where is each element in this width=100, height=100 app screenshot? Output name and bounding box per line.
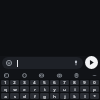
button[interactable]: Send — [85, 56, 98, 69]
button[interactable]: g — [40, 93, 49, 99]
staticText: o — [83, 87, 86, 92]
button[interactable]: s — [10, 93, 19, 99]
button[interactable]: h — [50, 93, 59, 99]
staticText: 5 — [43, 80, 46, 85]
staticText: 2 — [13, 80, 16, 85]
button[interactable]: 6 — [50, 80, 59, 85]
button[interactable]: Camera — [56, 72, 63, 79]
button[interactable]: Gallery — [3, 72, 10, 79]
button[interactable]: w — [10, 86, 19, 92]
button[interactable]: j — [60, 93, 69, 99]
staticText: 9 — [83, 80, 86, 85]
button[interactable]: 1 — [1, 80, 9, 85]
staticText: r — [34, 87, 36, 92]
staticText: p — [93, 87, 96, 92]
button[interactable]: GIF — [38, 72, 45, 79]
button[interactable]: Attach file — [73, 72, 80, 79]
staticText: s — [14, 94, 16, 99]
button[interactable]: t — [40, 86, 49, 92]
staticText: 4 — [33, 80, 36, 85]
button[interactable]: * — [90, 93, 99, 99]
button[interactable]: q — [1, 86, 9, 92]
staticText: 3 — [23, 80, 26, 85]
button[interactable]: 3 — [20, 80, 29, 85]
staticText: * — [93, 94, 96, 99]
staticText: j — [64, 94, 66, 99]
button[interactable]: Emoji — [2, 57, 83, 69]
button[interactable]: l — [80, 93, 89, 99]
button[interactable]: 0 — [90, 80, 99, 85]
button[interactable]: 5 — [40, 80, 49, 85]
staticText: g — [43, 94, 46, 99]
button[interactable]: d — [20, 93, 29, 99]
staticText: d — [23, 94, 26, 99]
staticText: a — [4, 94, 7, 99]
button[interactable]: y — [50, 86, 59, 92]
staticText: k — [73, 94, 76, 99]
staticText: t — [44, 87, 46, 92]
button[interactable]: u — [60, 86, 69, 92]
staticText: 7 — [63, 80, 66, 85]
button[interactable]: 8 — [70, 80, 79, 85]
button[interactable]: i — [70, 86, 79, 92]
button[interactable]: 2 — [10, 80, 19, 85]
staticText: i — [74, 87, 76, 92]
button[interactable]: 4 — [30, 80, 39, 85]
button[interactable]: e — [20, 86, 29, 92]
staticText: l — [84, 94, 86, 99]
staticText: 8 — [73, 80, 76, 85]
button[interactable]: Voice input — [72, 59, 80, 67]
staticText: 6 — [53, 80, 56, 85]
button[interactable]: 9 — [80, 80, 89, 85]
staticText: h — [53, 94, 56, 99]
staticText: e — [23, 87, 26, 92]
staticText: w — [13, 87, 17, 92]
button[interactable]: f — [30, 93, 39, 99]
button[interactable]: p — [90, 86, 99, 92]
staticText: 0 — [93, 80, 96, 85]
button[interactable]: Emoji — [5, 59, 13, 67]
button[interactable]: Sticker — [21, 72, 28, 79]
staticText: u — [63, 87, 66, 92]
staticText: f — [34, 94, 36, 99]
button[interactable]: a — [1, 93, 9, 99]
button[interactable]: r — [30, 86, 39, 92]
staticText: y — [53, 87, 56, 92]
button[interactable]: 7 — [60, 80, 69, 85]
button[interactable]: More options — [91, 72, 97, 78]
button[interactable]: o — [80, 86, 89, 92]
button[interactable]: k — [70, 93, 79, 99]
staticText: 1 — [4, 80, 7, 85]
staticText: q — [4, 87, 7, 92]
